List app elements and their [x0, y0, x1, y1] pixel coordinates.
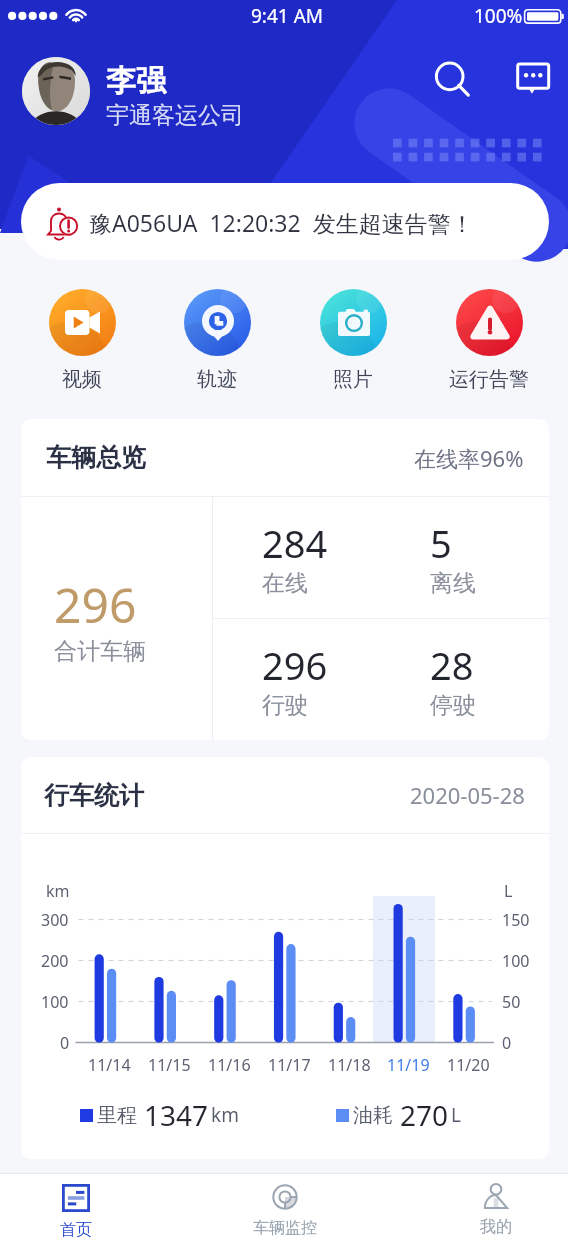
staticText: 11/15 [148, 1054, 191, 1076]
staticText: 5 [430, 517, 452, 569]
button[interactable]: 车辆监控 [235, 1173, 335, 1240]
button[interactable]: 284 [213, 497, 381, 618]
staticText: 行车统计 [44, 780, 144, 811]
staticText: 11/20 [447, 1054, 490, 1076]
button[interactable]: Search [428, 55, 472, 99]
button[interactable]: 296 [21, 497, 212, 740]
staticText: L [451, 1102, 461, 1128]
staticText: 100 [502, 950, 530, 972]
staticText: 296 [262, 639, 328, 691]
button[interactable]: 首页 [26, 1173, 126, 1240]
staticText: 11/16 [208, 1054, 251, 1076]
staticText: 50 [502, 991, 521, 1013]
button[interactable]: Messages [511, 55, 555, 99]
staticText: 行驶 [262, 691, 308, 720]
staticText: km [46, 880, 70, 902]
staticText: 我的 [480, 1217, 512, 1237]
button[interactable]: 28 [381, 619, 549, 740]
staticText: 车辆总览 [46, 442, 146, 473]
staticText: 0 [60, 1032, 70, 1054]
button[interactable]: 照片 [293, 289, 413, 392]
staticText: 100 [41, 991, 69, 1013]
staticText: 视频 [62, 367, 102, 392]
button[interactable]: 运行告警 [429, 289, 549, 392]
staticText: 轨迹 [197, 367, 237, 392]
staticText: 在线 [262, 569, 308, 598]
staticText: 李强 [106, 62, 166, 100]
staticText: 11/14 [88, 1054, 131, 1076]
staticText: 2020-05-28 [410, 780, 525, 810]
button[interactable]: 296 [213, 619, 381, 740]
staticText: 11/18 [328, 1054, 371, 1076]
staticText: 0 [502, 1032, 512, 1054]
staticText: 里程 [97, 1103, 137, 1128]
staticText: 200 [41, 950, 69, 972]
button[interactable]: 5 [381, 497, 549, 618]
staticText: 合计车辆 [54, 637, 146, 666]
staticText: 300 [41, 909, 69, 931]
button[interactable]: 我的 [446, 1173, 546, 1240]
staticText: 270 [400, 1096, 449, 1134]
staticText: 284 [262, 517, 328, 569]
staticText: 首页 [60, 1220, 92, 1240]
button[interactable]: 视频 [22, 289, 142, 392]
button[interactable]: Profile photo [22, 57, 90, 125]
staticText: 运行告警 [449, 367, 529, 392]
staticText: 宇通客运公司 [106, 101, 244, 130]
staticText: km [211, 1102, 239, 1128]
staticText: 停驶 [430, 691, 476, 720]
staticText: 离线 [430, 569, 476, 598]
button[interactable]: 轨迹 [157, 289, 277, 392]
staticText: 9:41 AM [251, 3, 324, 29]
staticText: 1347 [144, 1096, 209, 1134]
staticText: 296 [54, 572, 137, 637]
staticText: 车辆监控 [253, 1218, 317, 1238]
staticText: 照片 [333, 367, 373, 392]
staticText: 11/19 [387, 1054, 430, 1076]
staticText: 28 [430, 639, 474, 691]
staticText: 150 [502, 909, 530, 931]
staticText: 豫A056UA 12:20:32 发生超速告警！ [89, 207, 474, 238]
staticText: 油耗 [353, 1103, 393, 1128]
staticText: L [504, 880, 513, 902]
staticText: 在线率96% [414, 443, 524, 473]
button[interactable]: 豫A056UA 12:20:32 发生超速告警！ [21, 183, 549, 260]
staticText: 100% [474, 3, 523, 29]
staticText: 11/17 [268, 1054, 311, 1076]
